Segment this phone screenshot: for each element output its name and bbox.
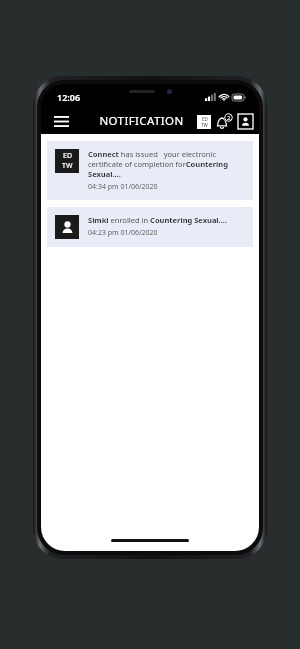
staticText: Connect has issued your electronic certi… [88, 149, 245, 179]
staticText: 04:34 pm 01/06/2020 [88, 182, 158, 192]
staticText: 2 [227, 114, 231, 122]
staticText: 04:23 pm 01/06/2020 [88, 228, 158, 238]
button[interactable]: EDTW logo [197, 115, 211, 129]
button[interactable]: ED [47, 141, 253, 200]
staticText: ED [202, 116, 208, 122]
staticText: TW [62, 161, 73, 171]
staticText: TW [201, 122, 208, 128]
staticText: NOTIFICATION [99, 113, 184, 129]
button[interactable]: Menu [51, 111, 71, 131]
staticText: ED [63, 151, 73, 161]
staticText: 12:06 [57, 91, 81, 103]
staticText: Simki enrolled in Countering Sexual.... [88, 215, 228, 225]
button[interactable]: Profile [238, 114, 253, 129]
button[interactable]: Notifications, 2 new [216, 113, 233, 130]
button[interactable]: Simki enrolled in Countering Sexual.... [47, 207, 253, 247]
